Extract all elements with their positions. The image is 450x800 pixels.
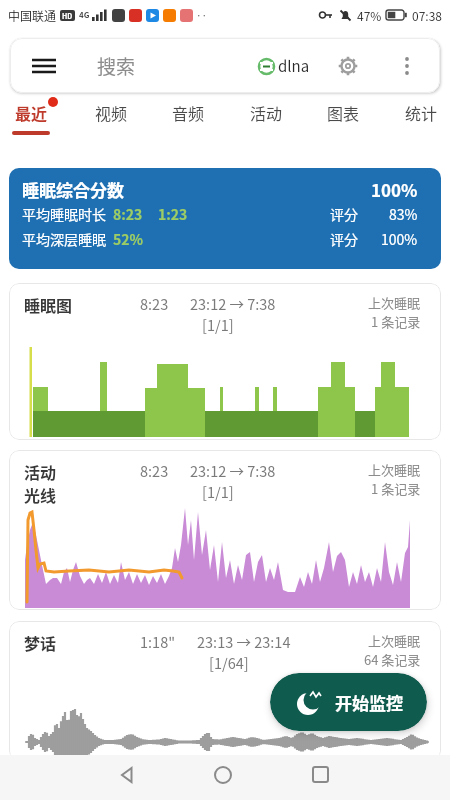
staticText: 8:23 xyxy=(140,293,169,314)
button[interactable]: 梦话 xyxy=(9,621,441,761)
button[interactable]: 活动 xyxy=(250,101,283,124)
staticText: [1/1] xyxy=(202,481,234,502)
staticText: 中国联通 xyxy=(8,7,57,24)
staticText: 上次睡眠 xyxy=(368,631,421,650)
staticText: 搜索 xyxy=(97,52,136,80)
staticText: 评分 xyxy=(330,204,358,224)
staticText: 1:18" xyxy=(140,631,176,652)
button[interactable]: 音频 xyxy=(172,101,205,124)
button[interactable] xyxy=(338,56,358,76)
staticText: 睡眠图 xyxy=(24,293,73,316)
staticText: 活动 xyxy=(24,460,57,483)
staticText: 梦话 xyxy=(24,631,57,654)
button[interactable]: 统计 xyxy=(405,101,438,124)
button[interactable] xyxy=(405,57,409,75)
staticText: 47% xyxy=(357,7,382,24)
staticText: 评分 xyxy=(330,229,358,249)
button[interactable] xyxy=(32,56,56,76)
button[interactable]: 活动 xyxy=(9,450,441,610)
staticText: 52% xyxy=(113,229,144,249)
button[interactable]: 图表 xyxy=(327,101,360,124)
button[interactable]: 睡眠综合分数 xyxy=(22,177,418,269)
staticText: 4G xyxy=(79,9,90,21)
staticText: dlna xyxy=(278,55,310,77)
button[interactable]: 睡眠图 xyxy=(9,283,441,440)
staticText: 睡眠综合分数 xyxy=(22,177,124,199)
staticText: 83% xyxy=(389,204,418,224)
staticText: [1/64] xyxy=(209,652,249,673)
staticText: 8:23 xyxy=(140,460,169,481)
staticText: 平均深层睡眠 xyxy=(22,229,106,249)
staticText: 光线 xyxy=(24,483,57,506)
staticText: 8:23 xyxy=(113,204,143,224)
staticText: 开始监控 xyxy=(335,690,403,715)
staticText: 64 条记录 xyxy=(364,650,421,669)
button[interactable]: 开始监控 xyxy=(270,673,427,731)
button[interactable]: 搜索 xyxy=(10,38,440,93)
button[interactable]: 最近 xyxy=(12,101,50,135)
staticText: 23:13 → 23:14 xyxy=(197,631,291,652)
staticText: 上次睡眠 xyxy=(368,460,421,479)
staticText: HD xyxy=(62,11,73,21)
staticText: [1/1] xyxy=(202,314,234,335)
staticText: 1:23 xyxy=(158,204,188,224)
staticText: 1 条记录 xyxy=(371,479,421,498)
staticText: 07:38 xyxy=(412,7,442,24)
staticText: 最近 xyxy=(15,101,48,124)
button[interactable] xyxy=(118,766,136,784)
staticText: 平均睡眠时长 xyxy=(22,204,106,224)
staticText: ‥ xyxy=(196,7,207,23)
button[interactable]: dlna xyxy=(258,55,310,77)
staticText: 上次睡眠 xyxy=(368,293,421,312)
staticText: 100% xyxy=(381,229,418,249)
staticText: 23:12 → 7:38 xyxy=(190,293,276,314)
staticText: 23:12 → 7:38 xyxy=(190,460,276,481)
button[interactable] xyxy=(214,766,232,784)
staticText: 100% xyxy=(371,177,418,199)
button[interactable]: 视频 xyxy=(95,101,128,124)
button[interactable] xyxy=(312,766,329,783)
staticText: 1 条记录 xyxy=(371,312,421,331)
